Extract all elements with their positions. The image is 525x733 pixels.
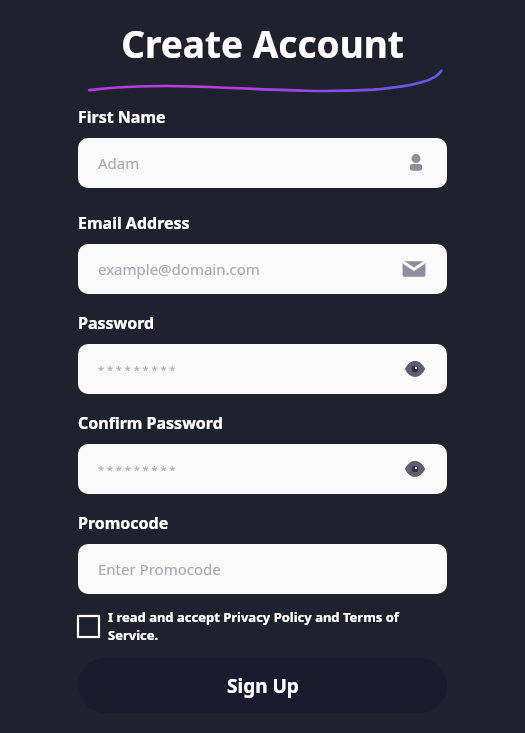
staticText: Password	[78, 312, 155, 334]
button[interactable]: example@domain.com	[78, 244, 447, 294]
staticText: * * * * * * * * *	[98, 462, 176, 477]
staticText: Promocode	[78, 512, 169, 534]
button[interactable]: * * * * * * * * *	[78, 444, 447, 494]
staticText: Email Address	[78, 212, 190, 234]
staticText: I read and accept Privacy Policy and Ter…	[108, 608, 447, 644]
staticText: Confirm Password	[78, 412, 223, 434]
staticText: Adam	[98, 153, 140, 173]
button[interactable]: I read and accept Privacy Policy and Ter…	[78, 608, 447, 644]
staticText: * * * * * * * * *	[98, 362, 176, 377]
staticText: Enter Promocode	[98, 559, 221, 579]
staticText: example@domain.com	[98, 259, 260, 279]
staticText: Sign Up	[227, 673, 299, 699]
staticText: Create Account	[78, 18, 447, 68]
button[interactable]: Enter Promocode	[78, 544, 447, 594]
staticText: First Name	[78, 106, 166, 128]
button[interactable]: Sign Up	[78, 658, 447, 713]
button[interactable]: * * * * * * * * *	[78, 344, 447, 394]
button[interactable]: Adam	[78, 138, 447, 188]
